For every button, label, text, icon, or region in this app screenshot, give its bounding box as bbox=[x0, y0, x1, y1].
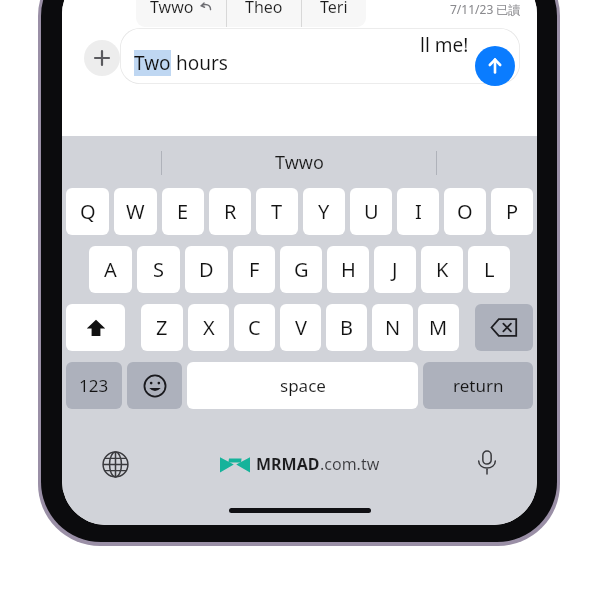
staticText: V bbox=[295, 314, 307, 341]
staticText: M bbox=[429, 314, 448, 341]
button[interactable]: D bbox=[185, 246, 228, 293]
button[interactable]: 123 bbox=[66, 362, 122, 409]
staticText: S bbox=[153, 256, 164, 283]
staticText: hours bbox=[176, 50, 228, 76]
staticText: 123 bbox=[79, 374, 109, 397]
staticText: W bbox=[126, 198, 145, 225]
button[interactable]: Teri bbox=[302, 0, 366, 27]
button[interactable]: Emoji bbox=[127, 362, 182, 409]
button[interactable]: L bbox=[468, 246, 510, 293]
staticText: .com.tw bbox=[320, 453, 380, 475]
staticText: Z bbox=[156, 314, 168, 341]
staticText: space bbox=[280, 374, 326, 397]
button[interactable]: E bbox=[162, 188, 204, 235]
button[interactable]: Q bbox=[66, 188, 109, 235]
button[interactable]: O bbox=[444, 188, 486, 235]
staticText: Twwo bbox=[150, 0, 194, 18]
button[interactable]: C bbox=[234, 304, 275, 351]
button[interactable]: Backspace bbox=[475, 304, 533, 351]
button[interactable]: space bbox=[187, 362, 418, 409]
staticText: P bbox=[506, 198, 519, 225]
button[interactable]: return bbox=[423, 362, 533, 409]
button[interactable]: J bbox=[374, 246, 416, 293]
button[interactable]: Theo bbox=[227, 0, 301, 27]
staticText: K bbox=[436, 256, 449, 283]
button[interactable]: I bbox=[397, 188, 439, 235]
staticText: Q bbox=[80, 198, 96, 225]
staticText: Two bbox=[134, 50, 171, 76]
button[interactable]: Dictation bbox=[470, 445, 504, 479]
staticText: Y bbox=[318, 198, 330, 225]
staticText: 7/11/23 已讀 bbox=[450, 1, 521, 17]
staticText: R bbox=[224, 198, 237, 225]
button[interactable]: Change keyboard language bbox=[98, 447, 132, 481]
button[interactable]: A bbox=[89, 246, 132, 293]
button[interactable]: P bbox=[491, 188, 533, 235]
button[interactable]: S bbox=[137, 246, 180, 293]
staticText: Twwo bbox=[275, 150, 324, 175]
button[interactable]: M bbox=[418, 304, 459, 351]
button[interactable]: Shift bbox=[66, 304, 125, 351]
staticText: J bbox=[392, 256, 398, 283]
button[interactable]: W bbox=[114, 188, 157, 235]
staticText: L bbox=[484, 256, 495, 283]
button[interactable]: B bbox=[326, 304, 367, 351]
button[interactable]: U bbox=[350, 188, 392, 235]
button[interactable]: N bbox=[372, 304, 413, 351]
button[interactable]: H bbox=[327, 246, 369, 293]
staticText: E bbox=[177, 198, 189, 225]
button[interactable]: K bbox=[421, 246, 463, 293]
staticText: C bbox=[248, 314, 261, 341]
button[interactable]: Add attachment bbox=[84, 40, 120, 76]
button[interactable]: T bbox=[256, 188, 298, 235]
staticText: Teri bbox=[320, 0, 348, 18]
staticText: O bbox=[457, 198, 473, 225]
staticText: T bbox=[271, 198, 283, 225]
staticText: G bbox=[294, 256, 309, 283]
button[interactable]: Z bbox=[141, 304, 183, 351]
staticText: N bbox=[385, 314, 401, 341]
staticText: Theo bbox=[245, 0, 283, 18]
staticText: B bbox=[340, 314, 353, 341]
staticText: return bbox=[453, 374, 504, 397]
staticText: A bbox=[104, 256, 117, 283]
button[interactable]: V bbox=[280, 304, 321, 351]
staticText: H bbox=[341, 256, 356, 283]
staticText: F bbox=[249, 256, 260, 283]
button[interactable]: Y bbox=[303, 188, 345, 235]
button[interactable]: R bbox=[209, 188, 251, 235]
staticText: D bbox=[199, 256, 214, 283]
button[interactable]: Twwo bbox=[136, 0, 226, 27]
staticText: ll me! bbox=[420, 32, 469, 58]
staticText: X bbox=[203, 314, 215, 341]
button[interactable]: X bbox=[188, 304, 229, 351]
button[interactable]: Send bbox=[475, 46, 515, 86]
staticText: I bbox=[415, 198, 422, 225]
staticText: U bbox=[364, 198, 379, 225]
staticText: MRMAD bbox=[256, 453, 320, 475]
button[interactable]: F bbox=[233, 246, 275, 293]
button[interactable]: G bbox=[280, 246, 322, 293]
